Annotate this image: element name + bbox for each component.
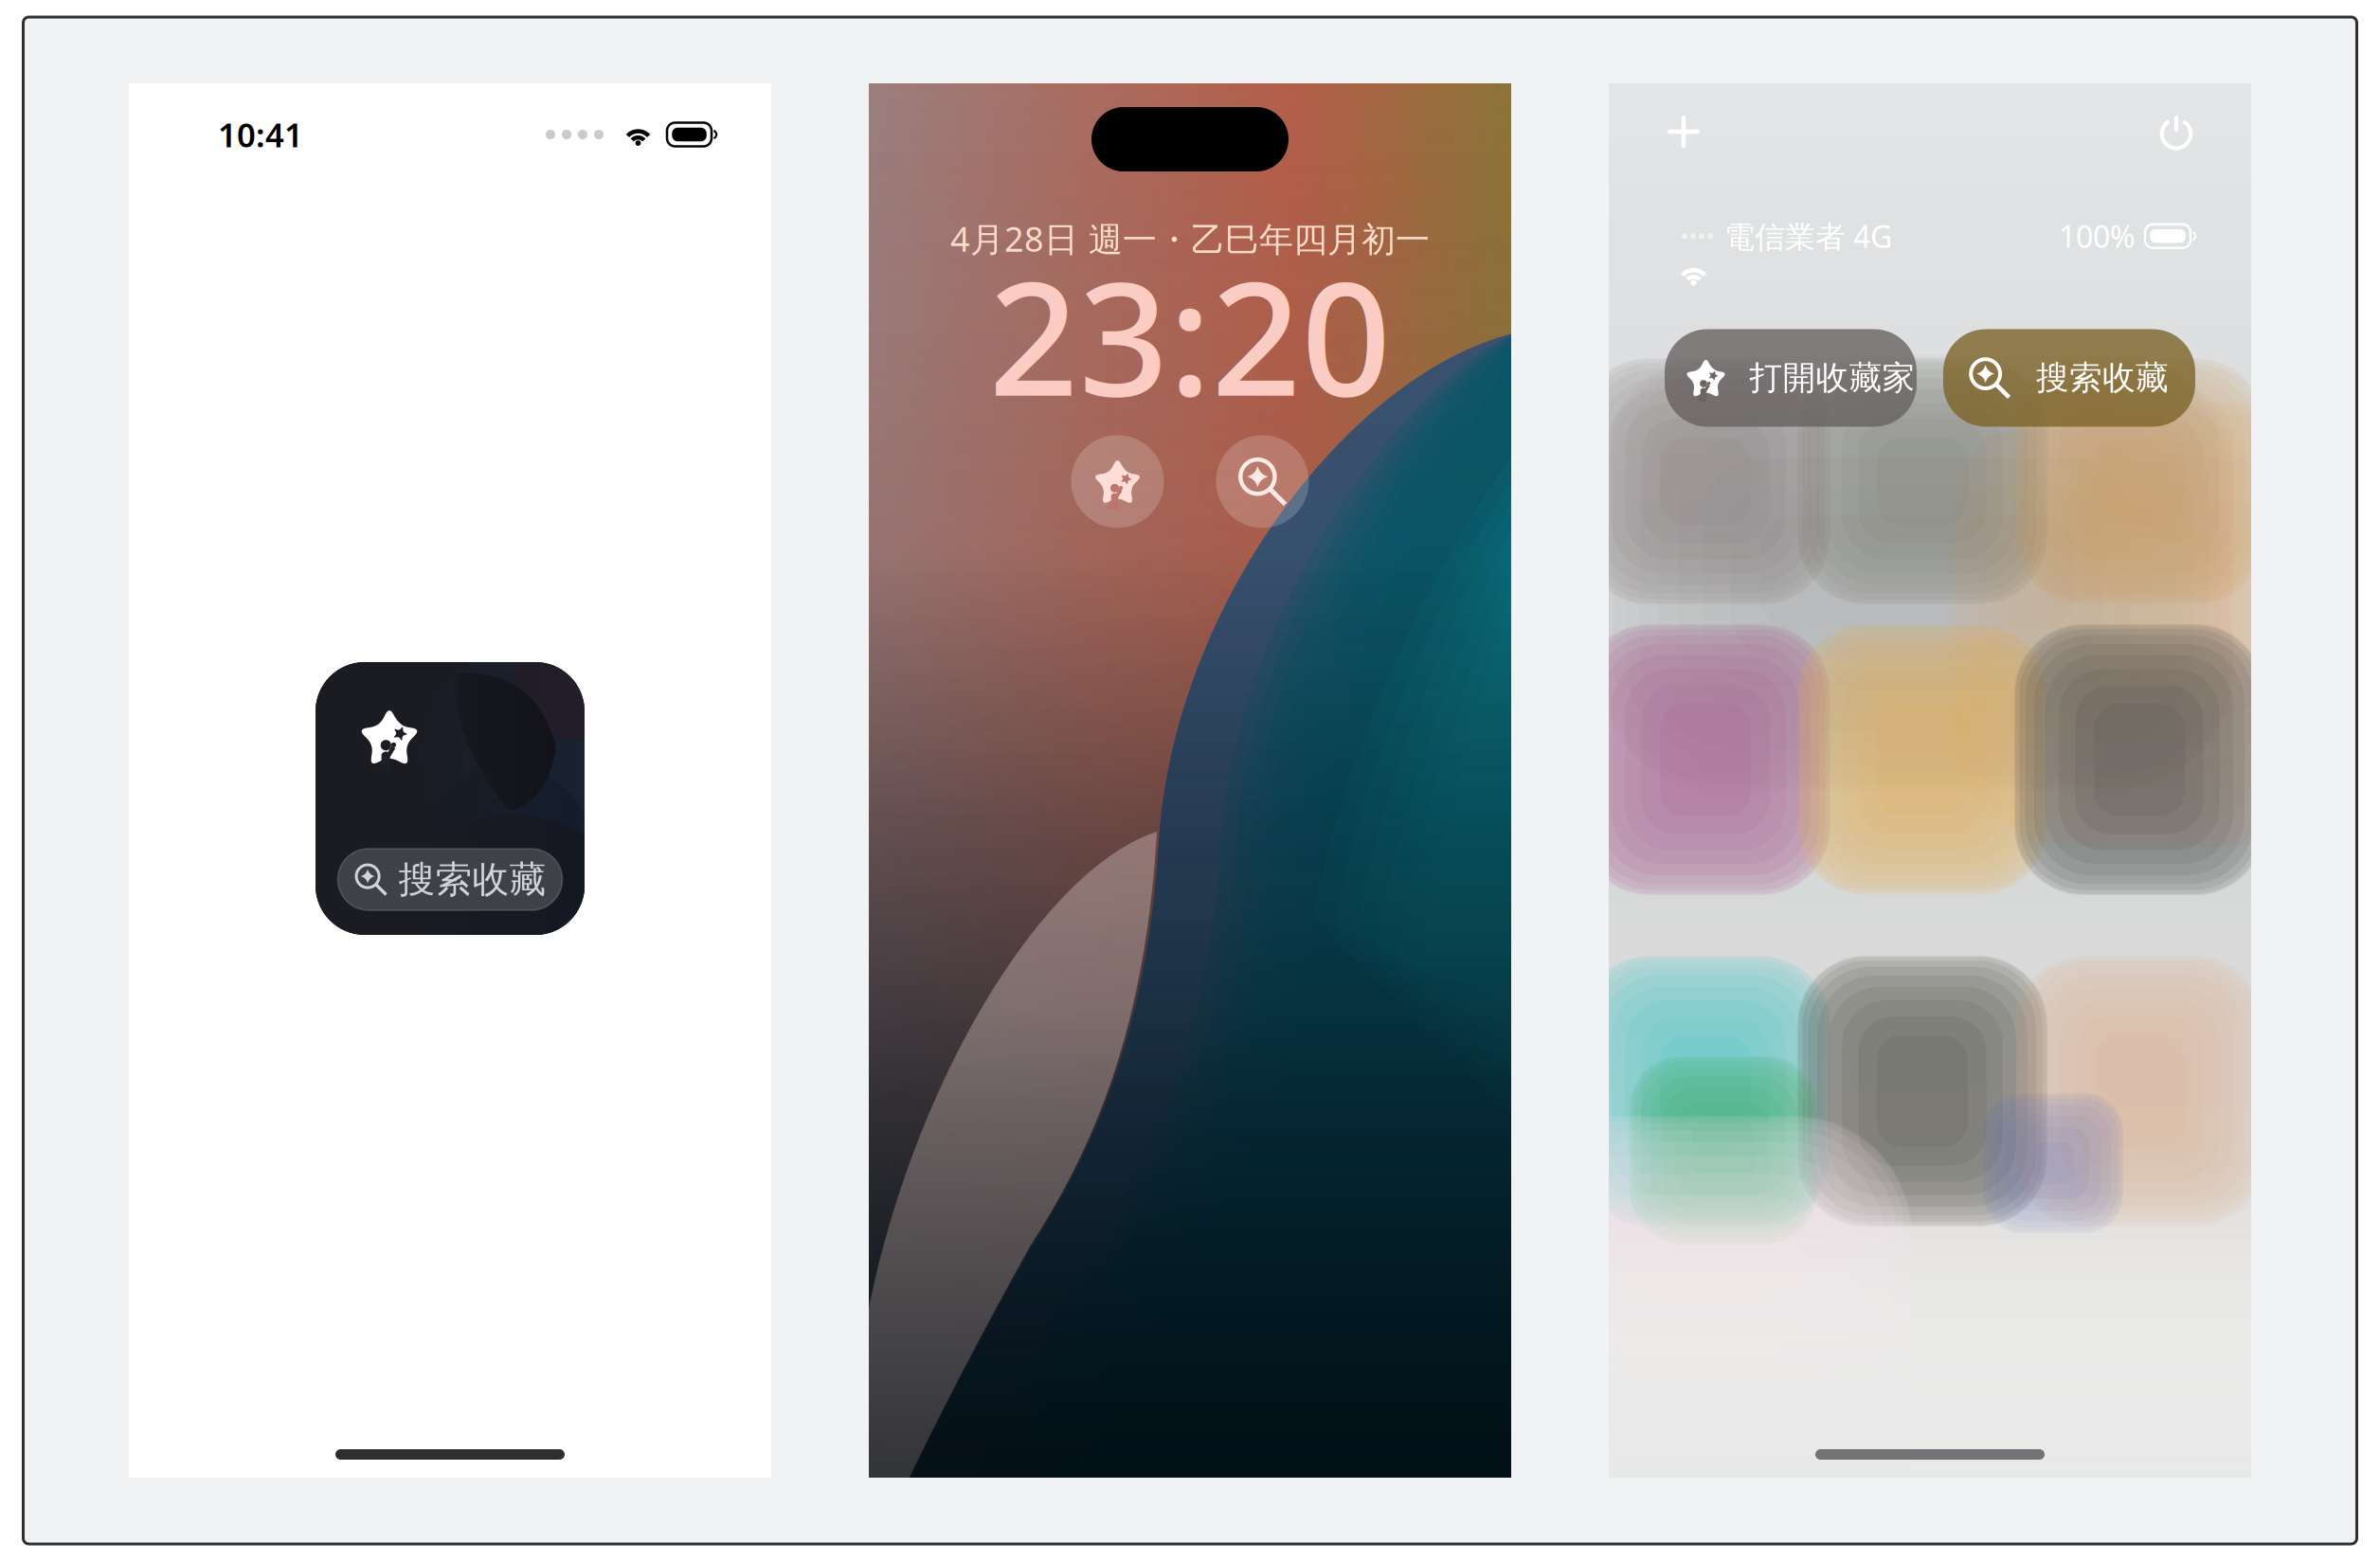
staticText: 電信業者 4G [1724,216,1892,256]
staticText: 搜索收藏 [398,857,546,902]
staticText: 打開收藏家 [1749,358,1915,398]
staticText: 23:20 [989,231,1391,439]
staticText: 搜索收藏 [2036,358,2169,398]
button[interactable]: 搜索收藏 [1943,329,2195,427]
button[interactable]: 關機 [2147,102,2206,161]
staticText: 10:41 [218,113,303,156]
button[interactable]: 搜索收藏 [338,849,562,910]
staticText: 100% [2059,216,2136,256]
button[interactable]: 打開收藏家 [1071,435,1164,528]
staticText: 4月28日 週一・乙巳年四月初一 [950,216,1430,261]
button[interactable]: 搜索收藏 [1216,435,1309,528]
button[interactable]: 加入控制項目 [1654,102,1713,161]
button[interactable]: 打開收藏家 [1665,329,1917,427]
